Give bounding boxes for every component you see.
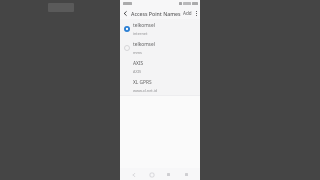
staticText: internet xyxy=(133,31,148,36)
button[interactable]: Navigate up xyxy=(120,8,130,18)
button[interactable]: AXIS xyxy=(120,57,200,76)
staticText: AXIS xyxy=(133,69,142,74)
staticText: Add xyxy=(183,10,192,16)
button[interactable]: Home xyxy=(147,170,156,179)
button[interactable]: Add xyxy=(182,9,193,17)
button[interactable]: telkomsel xyxy=(120,19,200,38)
staticText: telkomsel xyxy=(133,22,155,29)
button[interactable]: Recent apps xyxy=(164,170,173,179)
staticText: Access Point Names xyxy=(131,10,181,17)
staticText: mms xyxy=(133,50,142,55)
button[interactable]: XL GPRS xyxy=(120,76,200,95)
button[interactable]: telkomsel xyxy=(120,38,200,57)
staticText: XL GPRS xyxy=(133,79,152,86)
staticText: telkomsel xyxy=(133,41,155,48)
staticText: www.xl.net.id xyxy=(133,88,158,93)
button[interactable]: More options xyxy=(193,10,200,17)
button[interactable]: Back xyxy=(129,170,138,179)
staticText: AXIS xyxy=(133,60,144,67)
button[interactable]: Keyboard xyxy=(182,170,191,179)
